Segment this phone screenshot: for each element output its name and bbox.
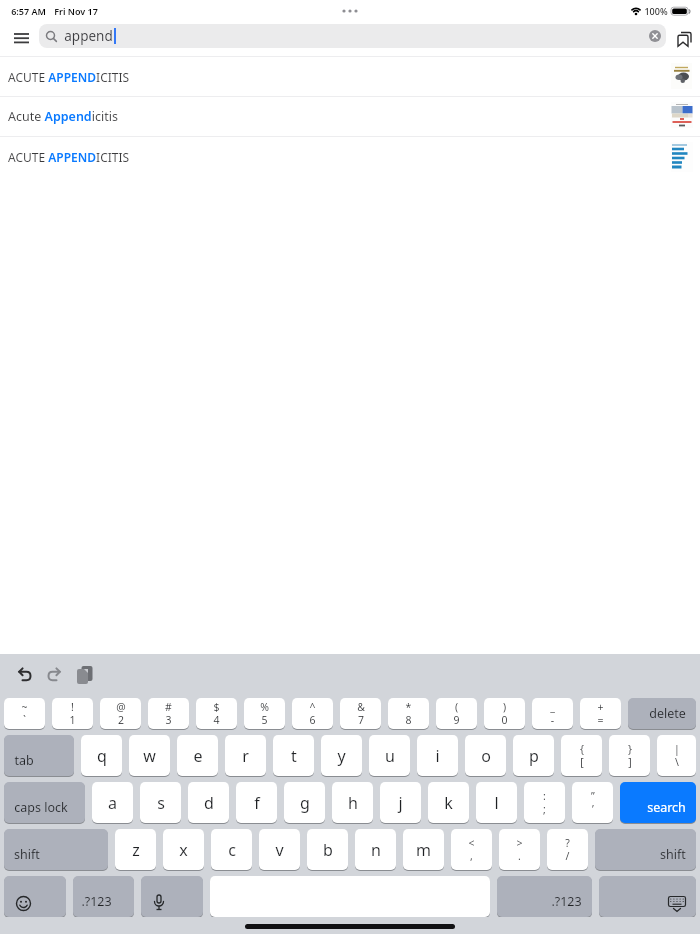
button[interactable]: v [259, 829, 300, 870]
button[interactable]: | \ [657, 735, 696, 776]
button[interactable] [40, 661, 68, 689]
button[interactable]: ? / [547, 829, 588, 870]
button[interactable]: ^ 6 [292, 698, 333, 729]
button[interactable]: $ 4 [196, 698, 237, 729]
button[interactable]: } ] [609, 735, 650, 776]
staticText: ACUTE APPENDICITIS [8, 69, 130, 85]
staticText: ? / [565, 836, 570, 863]
button[interactable]: k [428, 782, 469, 823]
button[interactable]: f [236, 782, 277, 823]
button[interactable]: append [39, 24, 666, 48]
button[interactable] [4, 876, 66, 917]
button[interactable] [6, 23, 36, 53]
button[interactable]: i [417, 735, 458, 776]
button[interactable]: w [129, 735, 170, 776]
button[interactable]: j [380, 782, 421, 823]
button[interactable]: .?123 [73, 876, 134, 917]
button[interactable]: tab [4, 735, 74, 776]
button[interactable]: ! 1 [52, 698, 93, 729]
button[interactable]: ACUTE APPENDICITIS [0, 57, 700, 96]
button[interactable]: delete [628, 698, 696, 729]
staticText: ^ 6 [309, 700, 316, 727]
staticText: x [179, 839, 188, 861]
staticText: } ] [628, 742, 632, 769]
staticText: % 5 [260, 700, 269, 727]
button[interactable]: : ; [524, 782, 565, 823]
button[interactable]: + = [580, 698, 621, 729]
button[interactable]: n [355, 829, 396, 870]
staticText: r [242, 745, 249, 767]
staticText: j [398, 792, 403, 814]
staticText: { [ [580, 742, 584, 769]
staticText: > . [516, 836, 523, 863]
button[interactable]: & 7 [340, 698, 381, 729]
staticText: $ 4 [213, 700, 220, 727]
button[interactable]: m [403, 829, 444, 870]
button[interactable]: h [332, 782, 373, 823]
button[interactable]: caps lock [4, 782, 85, 823]
button[interactable]: Acute Appendicitis [0, 97, 700, 136]
button[interactable]: o [465, 735, 506, 776]
staticText: ACUTE APPENDICITIS [8, 149, 130, 165]
button[interactable]: ACUTE APPENDICITIS [0, 137, 700, 176]
button[interactable]: z [115, 829, 156, 870]
staticText: p [529, 745, 539, 767]
button[interactable]: .?123 [497, 876, 592, 917]
button[interactable]: q [81, 735, 122, 776]
staticText: e [193, 745, 203, 767]
button[interactable] [599, 876, 696, 917]
button[interactable]: p [513, 735, 554, 776]
button[interactable]: t [273, 735, 314, 776]
staticText: .?123 [81, 893, 112, 910]
button[interactable]: % 5 [244, 698, 285, 729]
button[interactable]: g [284, 782, 325, 823]
button[interactable]: _ - [532, 698, 573, 729]
staticText: y [337, 745, 346, 767]
staticText: search [647, 799, 686, 816]
button[interactable]: d [188, 782, 229, 823]
button[interactable] [670, 23, 698, 53]
button[interactable]: @ 2 [100, 698, 141, 729]
button[interactable]: ) 0 [484, 698, 525, 729]
button[interactable]: shift [595, 829, 696, 870]
button[interactable]: ~ ` [4, 698, 45, 729]
button[interactable] [141, 876, 203, 917]
button[interactable]: y [321, 735, 362, 776]
button[interactable]: < , [451, 829, 492, 870]
staticText: * 8 [405, 700, 412, 727]
button[interactable]: ” ’ [572, 782, 613, 823]
button[interactable]: # 3 [148, 698, 189, 729]
button[interactable]: e [177, 735, 218, 776]
staticText: Acute Appendicitis [8, 108, 118, 125]
staticText: g [300, 792, 310, 814]
button[interactable]: search [620, 782, 696, 823]
staticText: o [481, 745, 491, 767]
staticText: | \ [674, 742, 680, 769]
button[interactable]: * 8 [388, 698, 429, 729]
staticText: a [108, 792, 117, 814]
staticText: tab [14, 752, 34, 769]
button[interactable]: l [476, 782, 517, 823]
button[interactable]: > . [499, 829, 540, 870]
button[interactable] [71, 661, 99, 689]
staticText: d [204, 792, 214, 814]
button[interactable]: u [369, 735, 410, 776]
staticText: k [444, 792, 453, 814]
staticText: w [143, 745, 156, 767]
button[interactable]: { [ [561, 735, 602, 776]
button[interactable]: a [92, 782, 133, 823]
staticText: 6:57 AM [11, 5, 46, 17]
button[interactable]: shift [4, 829, 108, 870]
button[interactable]: x [163, 829, 204, 870]
staticText: # 3 [165, 700, 172, 727]
button[interactable]: c [211, 829, 252, 870]
button[interactable]: ( 9 [436, 698, 477, 729]
button[interactable]: r [225, 735, 266, 776]
staticText: s [157, 792, 165, 814]
staticText: ) 0 [501, 700, 508, 727]
staticText: & 7 [357, 700, 365, 727]
button[interactable] [10, 661, 38, 689]
button[interactable]: s [140, 782, 181, 823]
button[interactable]: b [307, 829, 348, 870]
